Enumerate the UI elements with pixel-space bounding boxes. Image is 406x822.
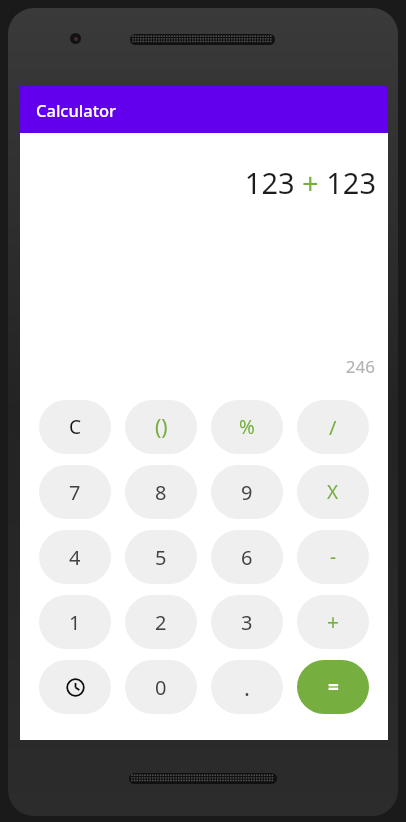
button[interactable]: -: [297, 530, 369, 584]
button[interactable]: History: [39, 660, 111, 714]
staticText: C: [69, 414, 82, 440]
staticText: 6: [241, 544, 253, 571]
staticText: 2: [155, 609, 167, 636]
button[interactable]: 8: [125, 465, 197, 519]
button[interactable]: 6: [211, 530, 283, 584]
staticText: 3: [241, 609, 253, 636]
button[interactable]: (): [125, 400, 197, 454]
button[interactable]: 0: [125, 660, 197, 714]
staticText: +: [327, 608, 340, 637]
staticText: 246: [20, 355, 375, 378]
staticText: .: [244, 672, 250, 702]
staticText: (): [155, 413, 168, 442]
staticText: 8: [155, 479, 167, 506]
button[interactable]: X: [297, 465, 369, 519]
staticText: Calculator: [36, 99, 117, 121]
button[interactable]: 4: [39, 530, 111, 584]
button[interactable]: 3: [211, 595, 283, 649]
staticText: 0: [155, 674, 167, 701]
button[interactable]: 7: [39, 465, 111, 519]
staticText: 9: [241, 479, 253, 506]
button[interactable]: .: [211, 660, 283, 714]
staticText: 4: [69, 544, 81, 571]
staticText: %: [239, 414, 255, 440]
button[interactable]: %: [211, 400, 283, 454]
button[interactable]: 9: [211, 465, 283, 519]
staticText: =: [328, 674, 339, 700]
staticText: 1: [69, 609, 81, 636]
button[interactable]: =: [297, 660, 369, 714]
button[interactable]: 1: [39, 595, 111, 649]
button[interactable]: 5: [125, 530, 197, 584]
staticText: /: [329, 414, 337, 441]
staticText: -: [330, 544, 337, 570]
staticText: 123 + 123: [20, 163, 376, 202]
button[interactable]: /: [297, 400, 369, 454]
staticText: 5: [155, 544, 167, 571]
button[interactable]: 2: [125, 595, 197, 649]
button[interactable]: +: [297, 595, 369, 649]
staticText: X: [327, 479, 339, 505]
button[interactable]: C: [39, 400, 111, 454]
staticText: 7: [69, 479, 81, 506]
